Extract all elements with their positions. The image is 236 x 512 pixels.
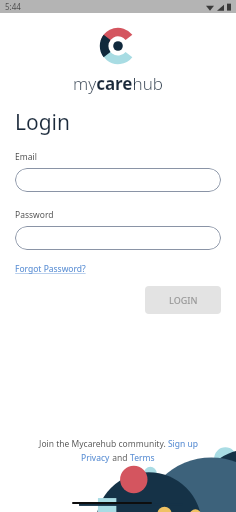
- button[interactable]: Privacy: [81, 452, 110, 464]
- staticText: and: [110, 452, 130, 464]
- staticText: Forgot Password?: [15, 263, 86, 275]
- button[interactable]: Forgot Password?: [15, 263, 86, 275]
- button[interactable]: Email input field: [15, 168, 221, 192]
- staticText: Password: [15, 209, 54, 221]
- button[interactable]: LOGIN: [145, 286, 221, 314]
- button[interactable]: Terms: [130, 452, 155, 464]
- staticText: mycarehub: [73, 72, 163, 95]
- staticText: Login: [15, 108, 71, 137]
- button[interactable]: Password input field: [15, 226, 221, 250]
- staticText: 5:44: [5, 1, 21, 12]
- staticText: Join the Mycarehub community. Sign up: [39, 438, 198, 450]
- staticText: Terms: [130, 452, 155, 464]
- staticText: Privacy: [81, 452, 110, 464]
- staticText: LOGIN: [169, 294, 198, 306]
- staticText: Email: [15, 151, 37, 163]
